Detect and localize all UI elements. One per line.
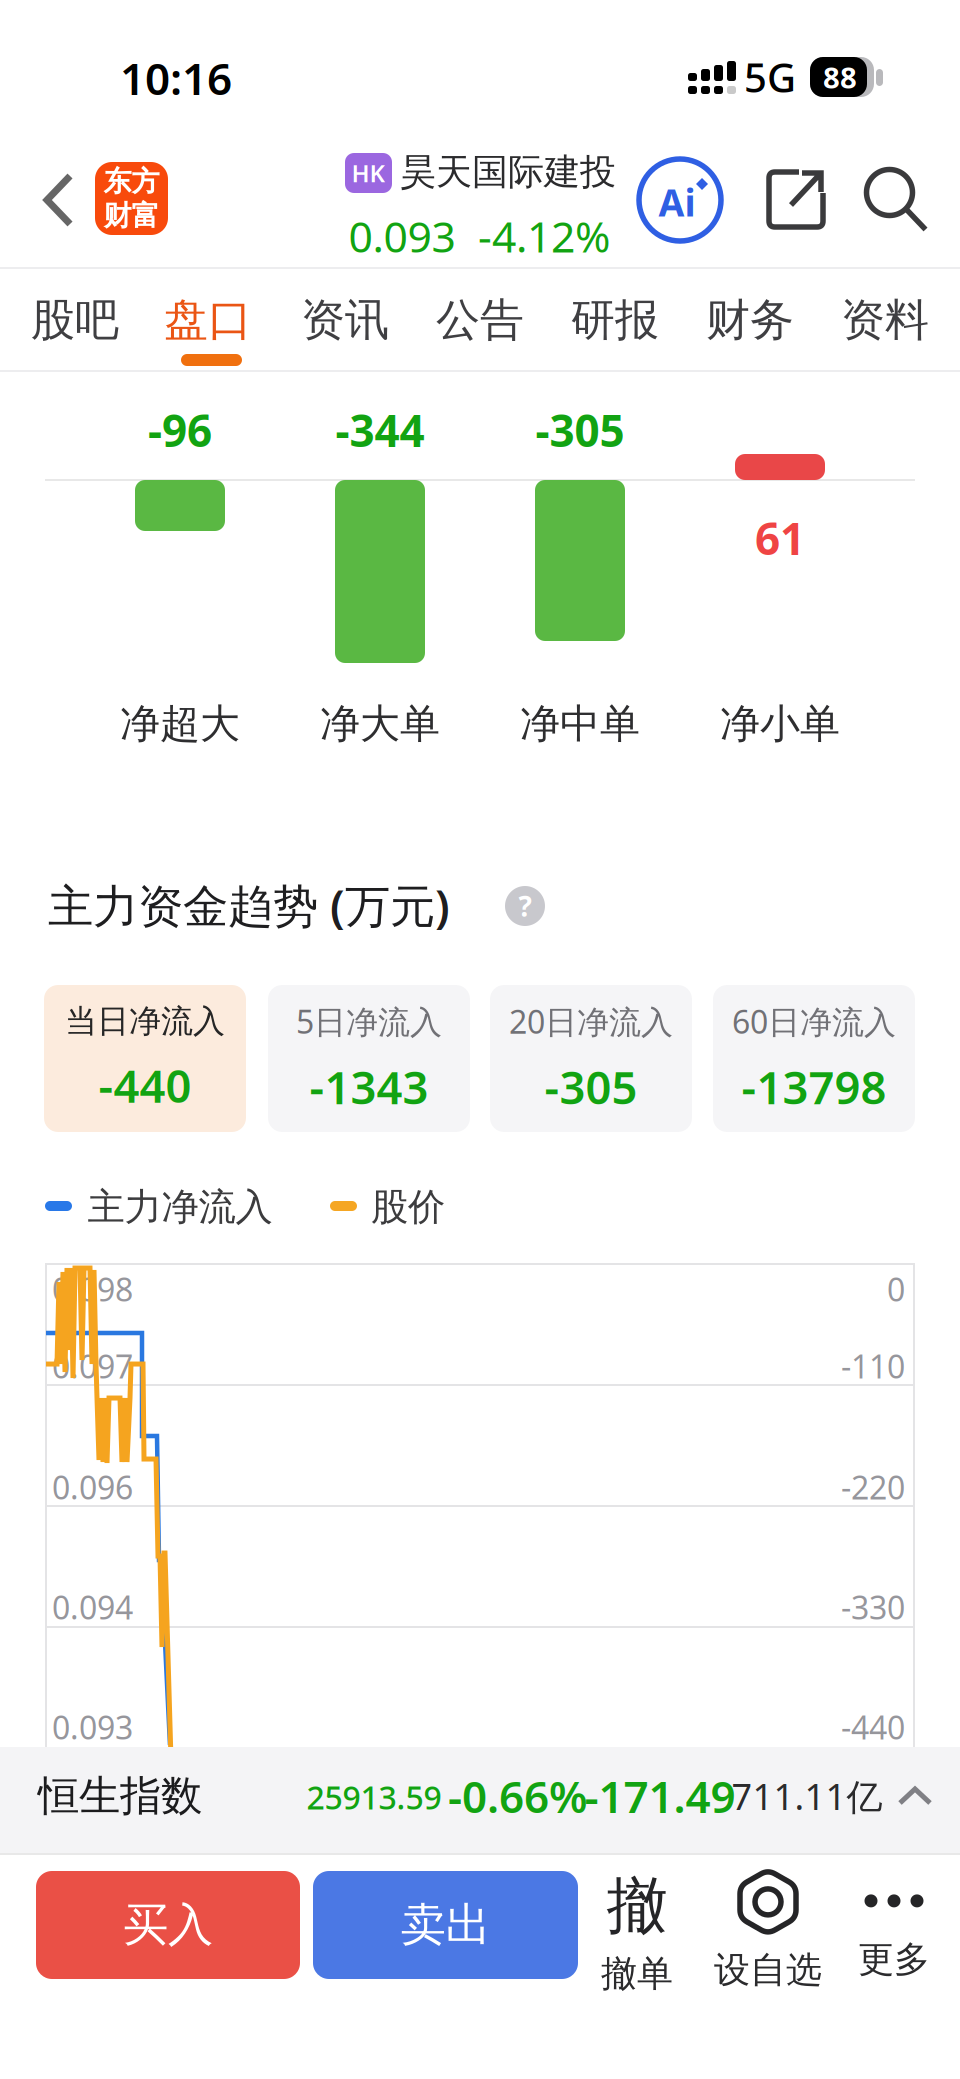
staticText: 更多: [858, 1937, 930, 1982]
staticText: 0.093: [52, 1706, 133, 1748]
staticText: 0.094: [52, 1586, 133, 1628]
staticText: -96: [148, 401, 212, 459]
staticText: 88: [823, 57, 857, 96]
button[interactable]: 恒生指数: [0, 1747, 960, 1853]
button[interactable]: 股吧: [15, 275, 135, 365]
staticText: 主力资金趋势 (万元): [48, 875, 450, 935]
staticText: 711.11亿: [731, 1772, 882, 1820]
button[interactable]: 设自选: [688, 1865, 848, 1995]
staticText: -171.49: [584, 1767, 735, 1825]
staticText: 盘口: [164, 293, 252, 347]
staticText: -440: [841, 1706, 905, 1748]
button[interactable]: ?: [505, 886, 545, 926]
button[interactable]: 盘口: [148, 275, 268, 365]
button[interactable]: 20日净流入: [490, 985, 692, 1132]
staticText: 0.096: [52, 1466, 133, 1508]
button[interactable]: 资讯: [285, 275, 405, 365]
staticText: -305: [535, 401, 624, 459]
staticText: 20日净流入: [509, 1000, 673, 1043]
staticText: 61: [755, 509, 805, 567]
staticText: 主力净流入: [87, 1184, 272, 1230]
button[interactable]: 5日净流入: [268, 985, 470, 1132]
staticText: 东方: [103, 164, 159, 198]
staticText: 设自选: [714, 1948, 822, 1992]
staticText: -220: [841, 1466, 905, 1508]
staticText: -1343: [309, 1057, 428, 1117]
button[interactable]: 60日净流入: [713, 985, 915, 1132]
button[interactable]: 卖出: [313, 1871, 578, 1979]
staticText: 0: [887, 1268, 905, 1310]
staticText: 净大单: [320, 699, 440, 748]
button[interactable]: [863, 167, 928, 232]
staticText: 恒生指数: [38, 1771, 202, 1821]
staticText: ?: [518, 887, 531, 925]
staticText: 撤单: [601, 1952, 673, 1996]
staticText: 0.097: [52, 1345, 133, 1387]
button[interactable]: Ai: [639, 159, 721, 241]
staticText: HK: [351, 157, 385, 189]
staticText: 卖出: [400, 1897, 490, 1953]
staticText: 撤: [606, 1868, 667, 1943]
button[interactable]: [766, 169, 826, 230]
staticText: 0.093: [348, 208, 455, 264]
staticText: 60日净流入: [732, 1000, 896, 1043]
staticText: -344: [335, 401, 424, 459]
staticText: -330: [841, 1586, 905, 1628]
staticText: 公告: [436, 293, 524, 347]
staticText: Ai: [658, 177, 695, 227]
button[interactable]: 撤: [572, 1867, 702, 1997]
staticText: 昊天国际建投: [400, 150, 616, 194]
staticText: 股价: [371, 1184, 445, 1230]
staticText: 买入: [123, 1897, 213, 1953]
staticText: -305: [544, 1057, 637, 1117]
staticText: 资讯: [301, 293, 389, 347]
button[interactable]: [44, 173, 74, 227]
staticText: 5G: [744, 50, 796, 103]
button[interactable]: 公告: [420, 275, 540, 365]
staticText: 财务: [706, 293, 794, 347]
staticText: 净中单: [520, 699, 640, 748]
staticText: 净小单: [720, 699, 840, 748]
staticText: 净超大: [120, 699, 240, 748]
staticText: 资料: [841, 293, 929, 347]
staticText: 研报: [571, 293, 659, 347]
staticText: 当日净流入: [65, 1002, 225, 1041]
button[interactable]: 资料: [825, 275, 945, 365]
staticText: -0.66%: [448, 1767, 588, 1825]
staticText: -440: [98, 1055, 191, 1115]
button[interactable]: 买入: [36, 1871, 300, 1979]
staticText: 5日净流入: [296, 1000, 442, 1043]
staticText: -110: [841, 1345, 905, 1387]
staticText: 股吧: [31, 293, 119, 347]
button[interactable]: 更多: [829, 1873, 959, 2003]
staticText: 0.098: [52, 1268, 133, 1310]
button[interactable]: 研报: [555, 275, 675, 365]
staticText: 10:16: [120, 49, 232, 107]
button[interactable]: 财务: [690, 275, 810, 365]
button[interactable]: 当日净流入: [44, 985, 246, 1132]
staticText: -13798: [741, 1057, 886, 1117]
staticText: 财富: [103, 198, 159, 233]
staticText: 25913.59: [306, 1776, 441, 1818]
button[interactable]: 东方: [95, 162, 168, 235]
staticText: -4.12%: [478, 208, 610, 264]
